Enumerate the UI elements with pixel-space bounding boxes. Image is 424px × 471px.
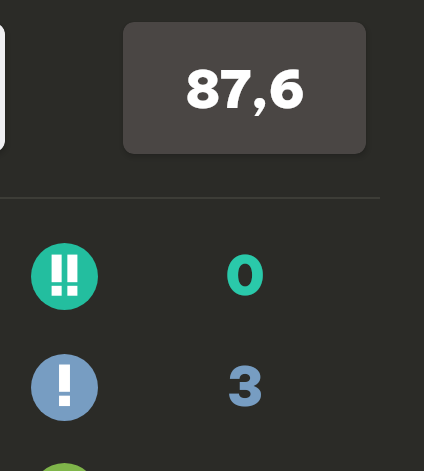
button[interactable]: 87,6 [123,22,366,154]
button[interactable]: Warnings [0,354,424,422]
staticText: 3 [209,352,281,420]
button[interactable]: Critical alerts [0,243,424,311]
button[interactable]: Previous card [0,23,5,152]
staticText: 87,6 [185,56,304,122]
button[interactable]: Notices [0,463,424,471]
staticText: 0 [209,241,281,309]
